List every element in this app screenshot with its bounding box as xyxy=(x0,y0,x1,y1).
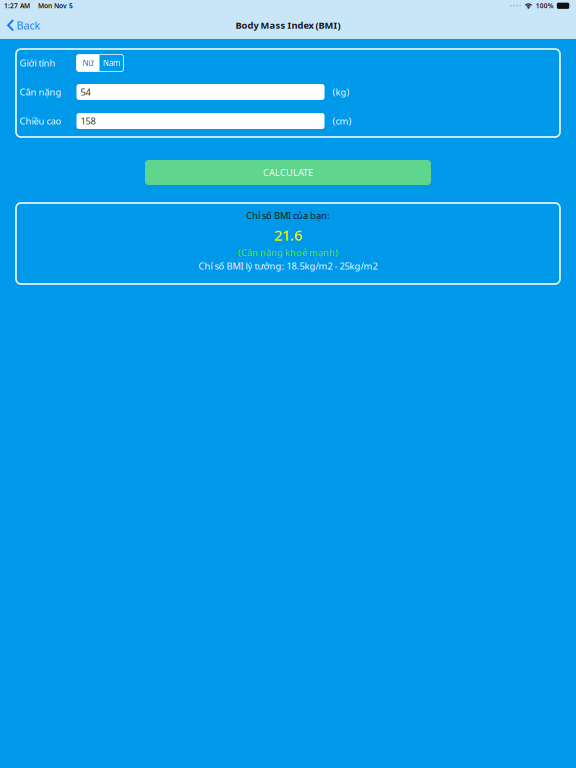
button[interactable]: 54 xyxy=(76,84,324,100)
staticText: (kg) xyxy=(332,86,349,98)
button[interactable]: CALCULATE xyxy=(145,160,431,185)
staticText: Giới tính xyxy=(19,57,55,69)
staticText: Nữ xyxy=(82,58,93,68)
staticText: Chiều cao xyxy=(19,115,61,127)
staticText: (cm) xyxy=(332,115,351,127)
staticText: Chỉ số BMI lý tưởng: 18.5kg/m2 - 25kg/m2 xyxy=(198,260,377,272)
staticText: Body Mass Index (BMI) xyxy=(235,19,340,31)
staticText: 158 xyxy=(80,115,95,127)
staticText: Cân nặng xyxy=(19,86,61,98)
staticText: 100% xyxy=(536,1,554,10)
staticText: (Cân nặng khoẻ mạnh) xyxy=(238,246,338,259)
staticText: Nam xyxy=(103,58,120,68)
staticText: Back xyxy=(16,18,40,32)
button[interactable]: Back xyxy=(0,13,46,37)
staticText: 1:27 AM xyxy=(4,1,30,10)
staticText: 54 xyxy=(80,86,90,98)
staticText: CALCULATE xyxy=(263,166,313,179)
staticText: Mon Nov 5 xyxy=(38,1,73,10)
staticText: Chỉ số BMI của bạn: xyxy=(246,209,330,222)
staticText: 21.6 xyxy=(274,225,302,245)
button[interactable]: 158 xyxy=(76,113,324,129)
button[interactable]: Nữ xyxy=(76,54,123,71)
